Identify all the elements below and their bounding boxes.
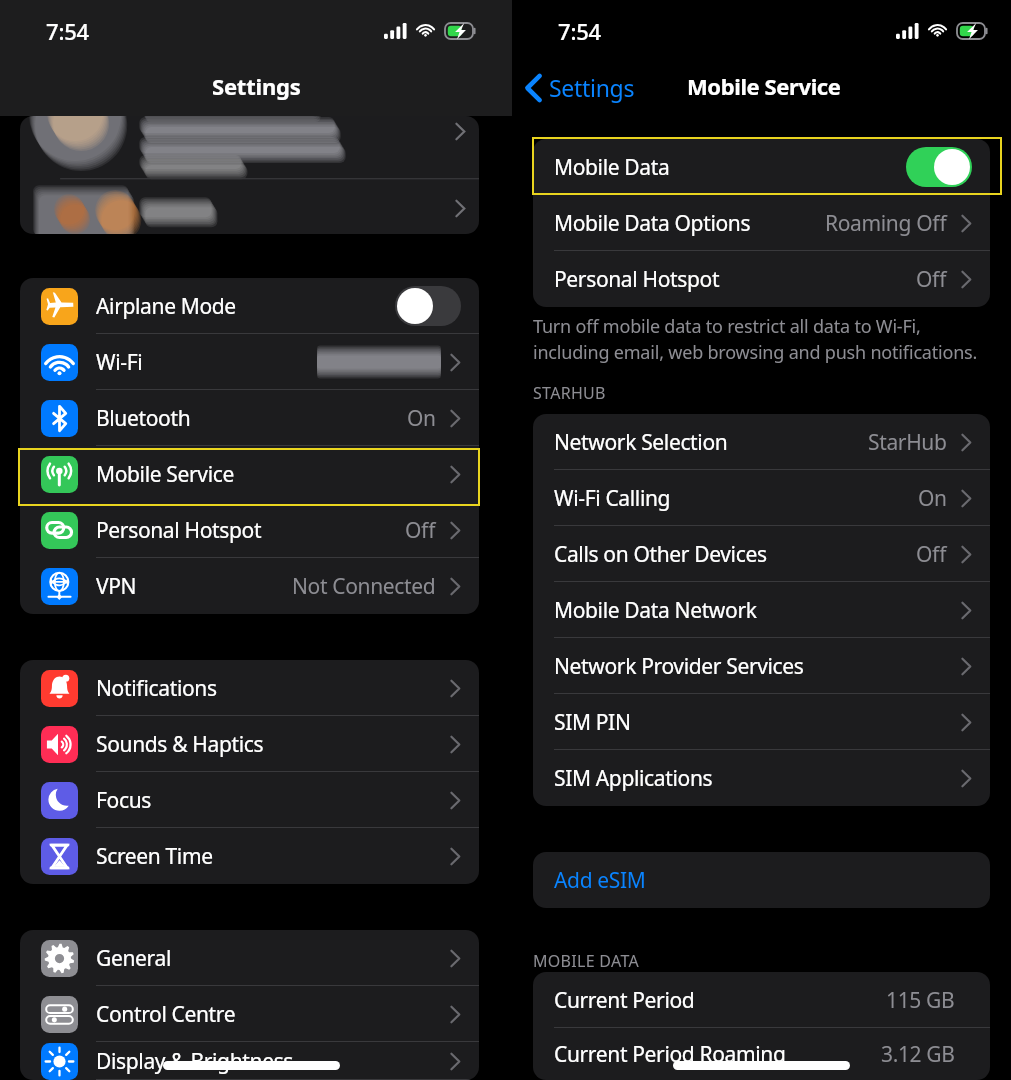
button[interactable]: Sounds & Haptics: [20, 716, 479, 772]
staticText: Mobile Service: [96, 460, 234, 489]
staticText: StarHub: [868, 428, 947, 457]
button[interactable]: Calls on Other Devices: [533, 526, 990, 582]
button[interactable]: Current Period Roaming: [533, 1028, 990, 1080]
staticText: SIM PIN: [554, 708, 631, 737]
staticText: 3.12 GB: [881, 1040, 955, 1069]
staticText: Settings: [212, 71, 301, 101]
staticText: Off: [916, 265, 947, 294]
button[interactable]: Wi-Fi Calling: [533, 470, 990, 526]
staticText: Control Centre: [96, 1000, 236, 1029]
button[interactable]: Notifications: [20, 660, 479, 716]
staticText: Add eSIM: [554, 866, 646, 895]
button[interactable]: Settings: [525, 72, 635, 103]
staticText: Roaming Off: [825, 209, 947, 238]
button[interactable]: Mobile Data Options: [533, 195, 990, 251]
staticText: Turn off mobile data to restrict all dat…: [533, 314, 978, 364]
staticText: Calls on Other Devices: [554, 540, 767, 569]
staticText: Mobile Service: [687, 71, 841, 101]
button[interactable]: Personal Hotspot: [20, 502, 479, 558]
staticText: Settings: [549, 72, 635, 103]
staticText: Wi-Fi: [96, 348, 143, 377]
staticText: STARHUB: [533, 382, 606, 404]
staticText: VPN: [96, 572, 137, 601]
staticText: Current Period: [554, 986, 695, 1015]
staticText: Bluetooth: [96, 404, 191, 433]
button[interactable]: SIM PIN: [533, 694, 990, 750]
staticText: 7:54: [46, 16, 89, 46]
button[interactable]: Airplane Mode: [20, 278, 479, 334]
staticText: Notifications: [96, 674, 217, 703]
button[interactable]: Wi-Fi: [20, 334, 479, 390]
staticText: SIM Applications: [554, 764, 713, 793]
staticText: Screen Time: [96, 842, 213, 871]
staticText: Personal Hotspot: [96, 516, 262, 545]
staticText: On: [407, 404, 436, 433]
button[interactable]: Add eSIM: [533, 852, 990, 908]
staticText: Personal Hotspot: [554, 265, 720, 294]
button[interactable]: Display & Brightness: [20, 1042, 479, 1080]
button[interactable]: Toggle off: [395, 286, 461, 326]
button[interactable]: Focus: [20, 772, 479, 828]
staticText: Off: [405, 516, 436, 545]
button[interactable]: Mobile Data Network: [533, 582, 990, 638]
staticText: Current Period Roaming: [554, 1040, 786, 1069]
staticText: General: [96, 944, 171, 973]
button[interactable]: Mobile Service: [20, 446, 479, 502]
button[interactable]: General: [20, 930, 479, 986]
staticText: Not Connected: [292, 572, 436, 601]
staticText: Network Provider Services: [554, 652, 804, 681]
staticText: 7:54: [558, 16, 601, 46]
staticText: Mobile Data: [554, 153, 670, 182]
button[interactable]: Bluetooth: [20, 390, 479, 446]
staticText: Mobile Data Network: [554, 596, 757, 625]
button[interactable]: Network Provider Services: [533, 638, 990, 694]
staticText: Focus: [96, 786, 151, 815]
button[interactable]: Control Centre: [20, 986, 479, 1042]
button[interactable]: Personal Hotspot: [533, 251, 990, 307]
staticText: Airplane Mode: [96, 292, 236, 321]
button[interactable]: SIM Applications: [533, 750, 990, 806]
staticText: Display & Brightness: [96, 1047, 294, 1076]
staticText: Wi-Fi Calling: [554, 484, 671, 513]
staticText: 115 GB: [886, 986, 955, 1015]
staticText: MOBILE DATA: [533, 950, 640, 972]
button[interactable]: Network Selection: [533, 414, 990, 470]
staticText: On: [918, 484, 947, 513]
staticText: Mobile Data Options: [554, 209, 751, 238]
button[interactable]: Toggle on: [906, 147, 972, 187]
staticText: Network Selection: [554, 428, 728, 457]
button[interactable]: Screen Time: [20, 828, 479, 884]
button[interactable]: Mobile Data: [533, 139, 990, 195]
staticText: Sounds & Haptics: [96, 730, 264, 759]
button[interactable]: VPN: [20, 558, 479, 614]
button[interactable]: Current Period: [533, 972, 990, 1028]
staticText: Off: [916, 540, 947, 569]
